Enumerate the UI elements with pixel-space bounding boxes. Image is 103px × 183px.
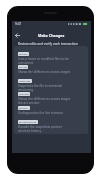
staticText: Edit messages log: [19, 121, 37, 124]
staticText: Edit entry: [19, 107, 29, 110]
button[interactable]: Back: [13, 31, 22, 40]
button[interactable]: Drop rows: [18, 92, 74, 105]
staticText: Shows the differences across stages the …: [18, 97, 74, 105]
staticText: Edit row: [19, 66, 27, 69]
button[interactable]: Merge rows: [18, 79, 74, 92]
button[interactable]: Edit row: [18, 65, 74, 78]
staticText: Lists a linear or modified files to be c…: [18, 57, 74, 65]
staticText: Drop rows: [19, 93, 29, 96]
staticText: Shows the differences across stages: [18, 70, 71, 74]
staticText: Decode the snapshots partner versions hi…: [18, 125, 74, 133]
staticText: Snapshots the file incremental versionin…: [18, 84, 74, 92]
staticText: Merge rows: [19, 80, 31, 83]
staticText: Review edits and verify each transaction: [18, 42, 78, 46]
staticText: Make Changes: [38, 33, 65, 38]
button[interactable]: Edit messages log: [18, 120, 74, 133]
staticText: 9:41: [15, 22, 22, 26]
button[interactable]: Edit date: [18, 52, 74, 65]
staticText: Edit date: [19, 53, 28, 56]
button[interactable]: Edit entry: [18, 106, 74, 119]
staticText: Undiagnostics the live instance: [18, 111, 63, 115]
